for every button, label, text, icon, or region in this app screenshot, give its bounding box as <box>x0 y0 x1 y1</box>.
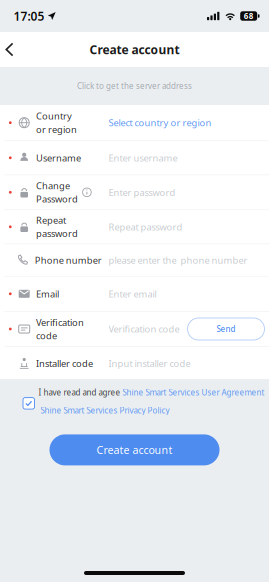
button[interactable]: Select country or region <box>108 116 264 129</box>
staticText: Country <box>36 110 72 122</box>
staticText: Installer code <box>36 357 93 370</box>
staticText: Create account <box>96 443 172 457</box>
staticText: Enter password <box>108 186 175 198</box>
button[interactable]: Click to get the server address <box>0 67 269 105</box>
staticText: Repeat <box>36 214 66 226</box>
button[interactable]: Back <box>0 32 22 66</box>
staticText: Password <box>36 193 78 205</box>
staticText: please enter the phone number <box>108 254 247 266</box>
staticText: I have read and agree <box>38 387 122 398</box>
staticText: code <box>36 329 57 342</box>
staticText: Create account <box>89 41 179 57</box>
staticText: Enter email <box>108 288 156 300</box>
staticText: password <box>36 227 78 240</box>
staticText: Change <box>36 179 70 192</box>
staticText: Click to get the server address <box>77 81 192 91</box>
button[interactable]: Agree to terms <box>22 397 35 410</box>
button[interactable]: Send <box>187 318 264 340</box>
staticText: 17:05 <box>13 8 44 24</box>
button[interactable]: Shine Smart Services Privacy Policy <box>40 405 169 416</box>
button[interactable]: Create account <box>49 434 219 465</box>
staticText: Send <box>216 324 235 334</box>
staticText: Phone number <box>35 254 102 266</box>
staticText: Email <box>36 288 59 300</box>
staticText: Shine Smart Services Privacy Policy <box>40 405 169 416</box>
staticText: Enter username <box>108 152 177 164</box>
staticText: Repeat password <box>108 221 182 233</box>
button[interactable]: Shine Smart Services User Agreement <box>122 387 264 398</box>
staticText: 68 <box>244 11 254 21</box>
staticText: or region <box>36 123 77 136</box>
staticText: Input installer code <box>108 357 190 370</box>
staticText: Verification <box>36 316 84 328</box>
staticText: Verification code <box>108 323 179 335</box>
staticText: Username <box>36 152 81 164</box>
staticText: Shine Smart Services User Agreement <box>122 387 264 398</box>
staticText: Select country or region <box>108 116 211 129</box>
